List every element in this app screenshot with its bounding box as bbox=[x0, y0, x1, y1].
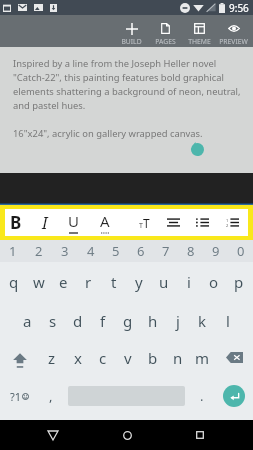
staticText: 6 bbox=[137, 242, 145, 260]
staticText: s bbox=[49, 311, 57, 331]
button[interactable]: c bbox=[90, 339, 115, 376]
button[interactable]: BUILD bbox=[114, 15, 148, 47]
staticText: t bbox=[111, 272, 117, 292]
staticText: 2 bbox=[35, 242, 43, 260]
button[interactable]: 7 bbox=[153, 240, 178, 262]
button[interactable]: p bbox=[226, 262, 251, 302]
staticText: e bbox=[59, 272, 68, 292]
staticText: B bbox=[10, 211, 22, 234]
button[interactable]: k bbox=[190, 302, 215, 339]
button[interactable]: U bbox=[60, 209, 86, 236]
button[interactable]: r bbox=[76, 262, 101, 302]
button[interactable]: Back bbox=[33, 420, 73, 450]
staticText: b bbox=[148, 348, 158, 368]
button[interactable]: . bbox=[190, 376, 214, 416]
staticText: T bbox=[143, 215, 150, 231]
staticText: BUILD bbox=[121, 37, 142, 46]
staticText: i bbox=[187, 272, 191, 292]
button[interactable]: Shift bbox=[0, 339, 39, 376]
button[interactable]: THEME bbox=[182, 15, 216, 47]
staticText: w bbox=[33, 272, 45, 292]
button[interactable]: i bbox=[176, 262, 201, 302]
staticText: 7 bbox=[162, 242, 170, 260]
button[interactable]: b bbox=[140, 339, 165, 376]
button[interactable]: 6 bbox=[128, 240, 153, 262]
button[interactable]: f bbox=[90, 302, 115, 339]
button[interactable]: Numbered list bbox=[219, 209, 245, 236]
button[interactable]: Backspace bbox=[215, 339, 253, 376]
button[interactable]: y bbox=[126, 262, 151, 302]
staticText: Inspired by a line from the Joseph Helle… bbox=[13, 57, 241, 112]
staticText: o bbox=[209, 272, 219, 292]
button[interactable]: 4 bbox=[78, 240, 103, 262]
button[interactable]: 8 bbox=[178, 240, 203, 262]
button[interactable]: PAGES bbox=[148, 15, 182, 47]
button[interactable]: , bbox=[39, 376, 63, 416]
staticText: j bbox=[176, 311, 180, 331]
button[interactable]: a bbox=[14, 302, 40, 339]
staticText: . bbox=[200, 387, 204, 405]
staticText: 9 bbox=[212, 242, 220, 260]
button[interactable]: Bulleted list bbox=[189, 209, 215, 236]
button[interactable]: I bbox=[32, 209, 58, 236]
button[interactable]: 2 bbox=[26, 240, 52, 262]
button[interactable]: w bbox=[26, 262, 51, 302]
button[interactable]: n bbox=[165, 339, 190, 376]
button[interactable]: o bbox=[201, 262, 226, 302]
button[interactable]: PREVIEW bbox=[216, 15, 250, 47]
staticText: c bbox=[99, 348, 107, 368]
button[interactable]: s bbox=[40, 302, 65, 339]
staticText: ?1 bbox=[10, 389, 22, 404]
button[interactable]: t bbox=[101, 262, 126, 302]
button[interactable]: Symbols bbox=[0, 376, 39, 416]
button[interactable]: g bbox=[115, 302, 140, 339]
staticText: x bbox=[74, 348, 82, 368]
staticText: 2 bbox=[226, 223, 229, 228]
button[interactable]: l bbox=[215, 302, 240, 339]
button[interactable]: d bbox=[65, 302, 90, 339]
staticText: n bbox=[173, 348, 183, 368]
staticText: z bbox=[48, 348, 56, 368]
staticText: m bbox=[195, 348, 210, 368]
staticText: PAGES bbox=[155, 37, 176, 46]
button[interactable]: 9 bbox=[203, 240, 228, 262]
staticText: h bbox=[148, 311, 158, 331]
staticText: U bbox=[68, 211, 79, 231]
button[interactable]: 5 bbox=[103, 240, 128, 262]
button[interactable]: q bbox=[2, 262, 26, 302]
staticText: 3 bbox=[61, 242, 69, 260]
staticText: r bbox=[85, 272, 92, 292]
button[interactable]: 3 bbox=[52, 240, 78, 262]
button[interactable]: Recents bbox=[180, 420, 220, 450]
staticText: u bbox=[159, 272, 169, 292]
staticText: k bbox=[198, 311, 207, 331]
button[interactable]: B bbox=[3, 209, 29, 236]
staticText: 9:56 bbox=[229, 1, 249, 15]
button[interactable]: z bbox=[39, 339, 65, 376]
staticText: f bbox=[100, 311, 106, 331]
button[interactable]: 1 bbox=[0, 240, 26, 262]
staticText: 0 bbox=[237, 242, 245, 260]
staticText: q bbox=[9, 272, 19, 292]
button[interactable]: e bbox=[51, 262, 76, 302]
staticText: a bbox=[23, 311, 32, 331]
staticText: d bbox=[73, 311, 83, 331]
staticText: 16"x24", acrylic on gallery wrapped canv… bbox=[13, 127, 203, 140]
button[interactable]: u bbox=[151, 262, 176, 302]
button[interactable]: Text size bbox=[131, 209, 157, 236]
staticText: 8 bbox=[187, 242, 195, 260]
staticText: THEME bbox=[188, 37, 211, 46]
button[interactable]: h bbox=[140, 302, 165, 339]
button[interactable]: m bbox=[190, 339, 215, 376]
button[interactable]: v bbox=[115, 339, 140, 376]
staticText: g bbox=[123, 311, 133, 331]
button[interactable]: Enter bbox=[223, 385, 245, 407]
button[interactable]: x bbox=[65, 339, 90, 376]
button[interactable]: A bbox=[92, 209, 118, 236]
button[interactable]: Home bbox=[107, 420, 147, 450]
button[interactable]: 0 bbox=[228, 240, 253, 262]
button[interactable]: Align bbox=[160, 209, 186, 236]
staticText: 1 bbox=[9, 242, 17, 260]
button[interactable]: j bbox=[165, 302, 190, 339]
